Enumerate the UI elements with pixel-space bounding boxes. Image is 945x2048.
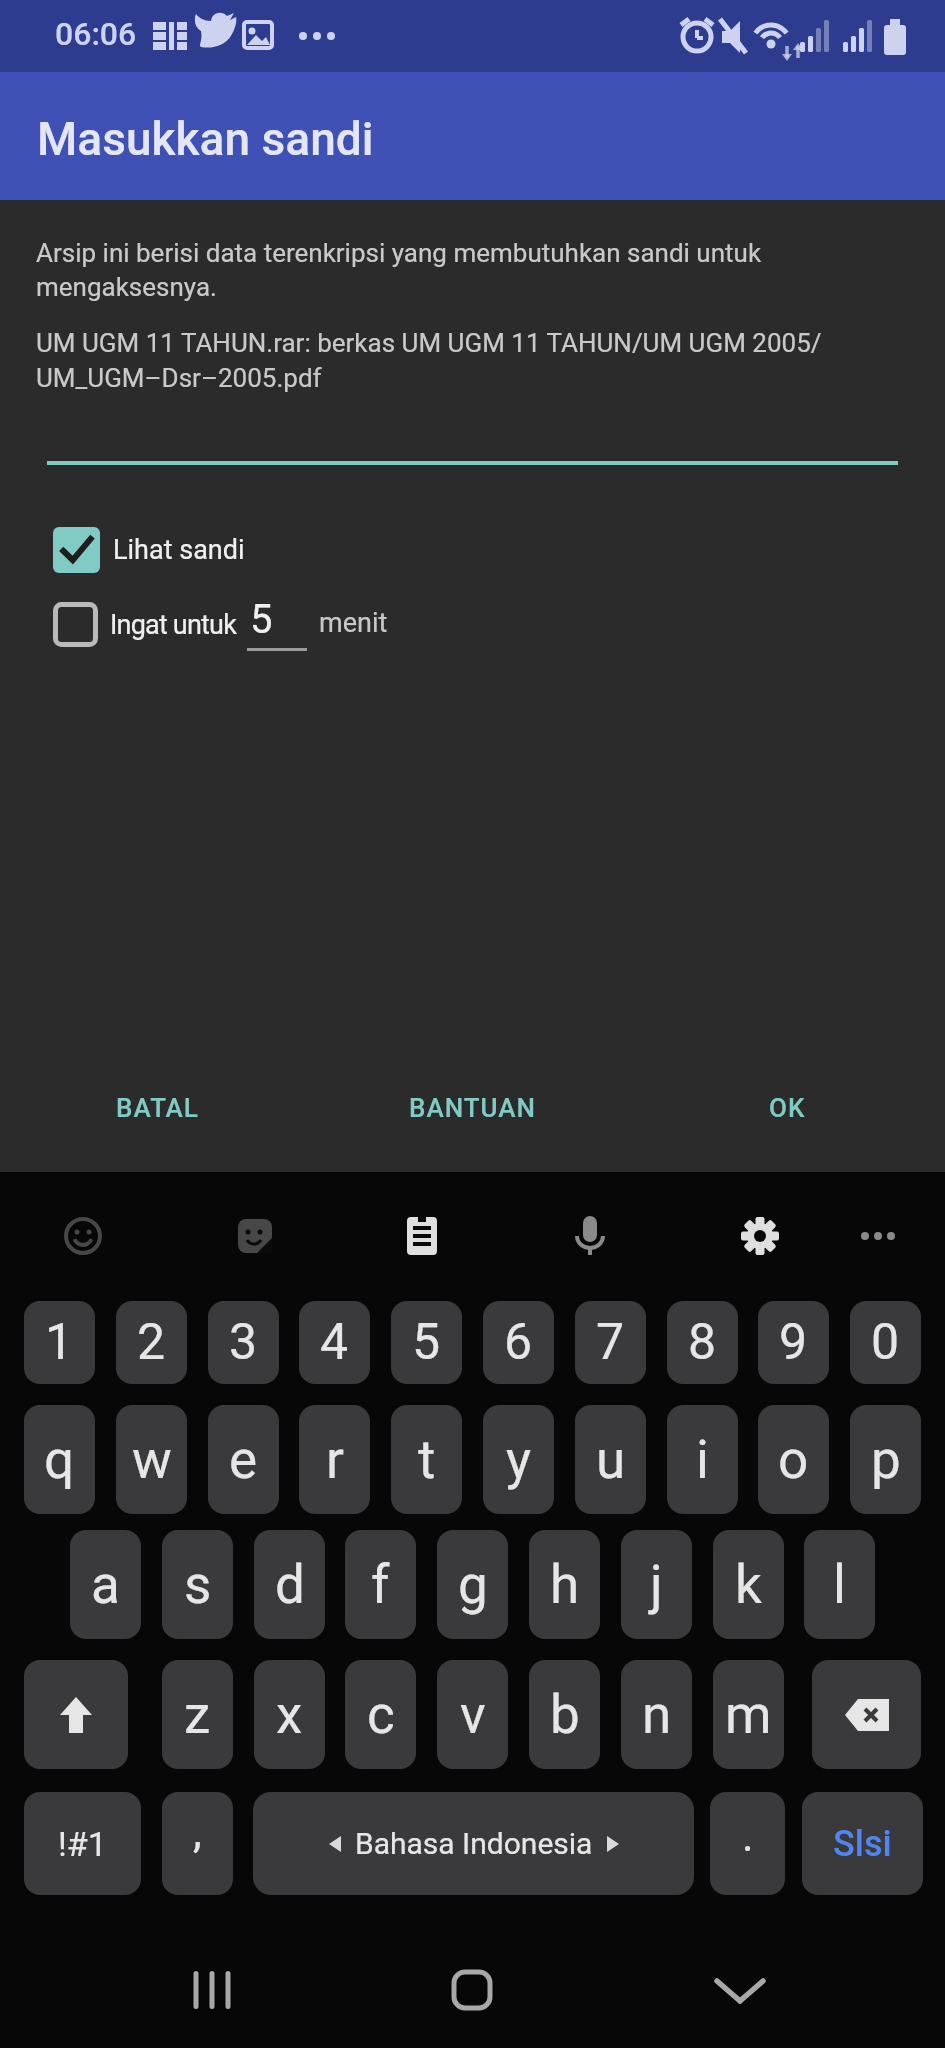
staticText: s (184, 1554, 212, 1616)
staticText: f (371, 1554, 390, 1616)
button[interactable]: 5 (250, 596, 273, 643)
button[interactable]: y (483, 1405, 554, 1514)
staticText: n (642, 1684, 672, 1746)
button[interactable]: k (713, 1530, 784, 1639)
button[interactable]: x (254, 1660, 325, 1769)
staticText: c (367, 1684, 395, 1746)
staticText: . (742, 1810, 754, 1862)
button[interactable]: 2 (116, 1301, 187, 1384)
button[interactable] (838, 1196, 918, 1276)
staticText: Masukkan sandi (37, 112, 374, 166)
staticText: 5 (412, 1313, 441, 1372)
button[interactable]: f (345, 1530, 416, 1639)
button[interactable]: 8 (667, 1301, 738, 1384)
button[interactable]: c (345, 1660, 416, 1769)
button[interactable]: BANTUAN (315, 1085, 630, 1131)
button[interactable] (407, 1950, 537, 2030)
staticText: , (193, 1806, 202, 1858)
staticText: 6 (504, 1313, 533, 1372)
button[interactable]: s (162, 1530, 233, 1639)
button[interactable]: , (162, 1792, 233, 1895)
staticText: 7 (596, 1313, 625, 1372)
button[interactable]: j (621, 1530, 692, 1639)
staticText: Ingat untuk (110, 609, 237, 641)
staticText: h (550, 1554, 580, 1616)
button[interactable]: 6 (483, 1301, 554, 1384)
button[interactable] (215, 1196, 295, 1276)
button[interactable]: 1 (24, 1301, 95, 1384)
button[interactable] (47, 408, 898, 465)
staticText: y (506, 1429, 532, 1491)
button[interactable]: u (575, 1405, 646, 1514)
staticText: b (550, 1684, 580, 1746)
button[interactable]: d (254, 1530, 325, 1639)
staticText: r (326, 1429, 344, 1491)
staticText: g (458, 1554, 488, 1616)
button[interactable]: e (208, 1405, 279, 1514)
button[interactable]: BATAL (0, 1085, 315, 1131)
button[interactable]: 0 (850, 1301, 921, 1384)
staticText: UM UGM 11 TAHUN.rar: berkas UM UGM 11 TA… (36, 328, 822, 393)
staticText: 3 (229, 1313, 258, 1372)
staticText: menit (319, 607, 388, 639)
staticText: 9 (779, 1313, 808, 1372)
button[interactable]: i (667, 1405, 738, 1514)
button[interactable]: z (162, 1660, 233, 1769)
staticText: w (132, 1429, 172, 1491)
button[interactable]: q (24, 1405, 95, 1514)
button[interactable]: g (437, 1530, 508, 1639)
button[interactable]: v (437, 1660, 508, 1769)
button[interactable]: 3 (208, 1301, 279, 1384)
button[interactable]: Ingat untuk (53, 602, 237, 647)
staticText: Arsip ini berisi data terenkripsi yang m… (36, 238, 762, 302)
button[interactable]: w (116, 1405, 187, 1514)
button[interactable]: r (299, 1405, 370, 1514)
staticText: m (725, 1684, 772, 1746)
staticText: Slsi (833, 1823, 892, 1865)
button[interactable]: 9 (758, 1301, 829, 1384)
staticText: x (276, 1684, 303, 1746)
button[interactable]: t (391, 1405, 462, 1514)
staticText: e (229, 1429, 258, 1491)
staticText: k (735, 1554, 762, 1616)
staticText: u (596, 1429, 626, 1491)
button[interactable]: 5 (391, 1301, 462, 1384)
button[interactable]: !#1 (24, 1792, 141, 1895)
button[interactable] (382, 1196, 462, 1276)
staticText: 2 (137, 1313, 166, 1372)
staticText: d (275, 1554, 305, 1616)
staticText: z (184, 1684, 211, 1746)
button[interactable] (675, 1950, 805, 2030)
button[interactable]: OK (630, 1085, 945, 1131)
button[interactable]: b (529, 1660, 600, 1769)
button[interactable] (147, 1950, 277, 2030)
staticText: Lihat sandi (113, 534, 245, 566)
button[interactable]: l (804, 1530, 875, 1639)
staticText: j (650, 1554, 663, 1616)
button[interactable]: Slsi (802, 1792, 923, 1895)
button[interactable] (43, 1196, 123, 1276)
staticText: 0 (871, 1313, 900, 1372)
button[interactable]: m (713, 1660, 784, 1769)
button[interactable]: Lihat sandi (53, 527, 245, 573)
button[interactable] (812, 1660, 921, 1769)
button[interactable]: o (758, 1405, 829, 1514)
staticText: !#1 (58, 1824, 107, 1864)
staticText: q (44, 1429, 75, 1491)
button[interactable]: n (621, 1660, 692, 1769)
button[interactable]: 7 (575, 1301, 646, 1384)
button[interactable]: p (850, 1405, 921, 1514)
button[interactable]: Bahasa Indonesia (253, 1792, 694, 1895)
staticText: a (91, 1554, 120, 1616)
staticText: i (696, 1429, 709, 1491)
button[interactable]: 4 (299, 1301, 370, 1384)
staticText: l (833, 1554, 846, 1616)
button[interactable] (720, 1196, 800, 1276)
button[interactable] (24, 1660, 128, 1769)
staticText: BATAL (116, 1093, 199, 1123)
staticText: 1 (45, 1313, 74, 1372)
button[interactable] (550, 1196, 630, 1276)
button[interactable]: a (70, 1530, 141, 1639)
button[interactable]: . (710, 1792, 785, 1895)
button[interactable]: h (529, 1530, 600, 1639)
